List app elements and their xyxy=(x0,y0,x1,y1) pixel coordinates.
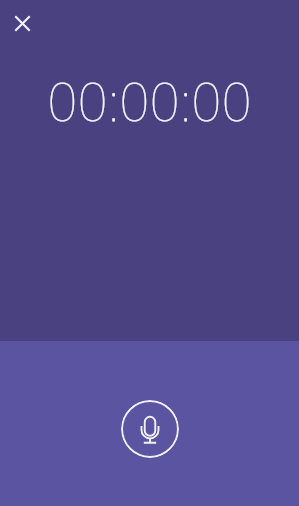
button[interactable]: Close xyxy=(0,1,44,45)
staticText: 00:00:00 xyxy=(0,64,299,136)
button[interactable]: Record xyxy=(121,400,179,458)
